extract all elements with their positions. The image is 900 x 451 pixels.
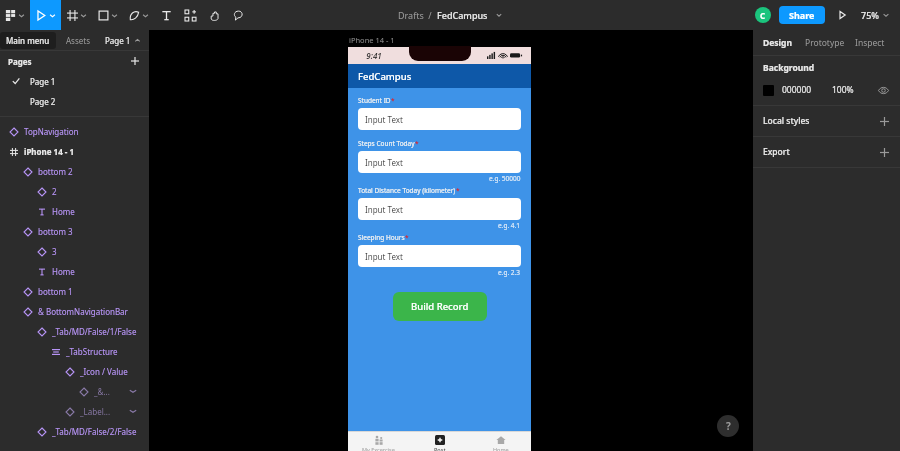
staticText: e.g. 50000 — [489, 174, 521, 183]
staticText: Input Text — [365, 114, 403, 125]
button[interactable]: & BottomNavigationBar — [0, 301, 149, 321]
button[interactable]: bottom 3 — [0, 221, 149, 241]
button[interactable]: Text tool — [154, 0, 178, 30]
button[interactable]: Design — [763, 33, 793, 53]
staticText: Build Record — [411, 300, 469, 313]
button[interactable]: Build Record — [393, 292, 487, 321]
button[interactable]: FedCampus — [435, 9, 490, 21]
button[interactable]: _TabStructure — [0, 341, 149, 361]
button[interactable]: bottom 1 — [0, 281, 149, 301]
button[interactable]: Share — [779, 6, 825, 24]
staticText: Steps Count Today — [358, 139, 415, 148]
staticText: Local styles — [763, 115, 810, 127]
staticText: bottom 2 — [38, 166, 73, 177]
button[interactable]: Home — [0, 201, 149, 221]
button[interactable]: _Icon / Value — [0, 361, 149, 381]
button[interactable]: Page 1 — [0, 71, 149, 91]
button[interactable]: Account C — [755, 7, 771, 23]
button[interactable]: Move tool — [30, 0, 61, 30]
staticText: Prototype — [805, 37, 845, 49]
staticText: iPhone 14 - 1 — [349, 35, 395, 45]
staticText: Background — [763, 62, 815, 74]
staticText: _Tab/MD/False/1/False — [52, 326, 137, 337]
button[interactable]: 100% — [832, 84, 854, 96]
staticText: 9:41 — [366, 50, 382, 61]
staticText: Input Text — [365, 204, 403, 215]
button[interactable]: Page 2 — [0, 91, 149, 111]
button[interactable]: Pen tool — [123, 0, 154, 30]
staticText: * — [405, 233, 409, 242]
button[interactable]: Export — [753, 137, 900, 167]
staticText: ? — [726, 419, 731, 433]
staticText: / — [426, 9, 435, 21]
staticText: 3 — [52, 246, 57, 257]
button[interactable]: Input Text — [358, 151, 521, 173]
button[interactable]: Figma menu — [0, 0, 30, 30]
button[interactable]: Main menu — [0, 32, 56, 49]
button[interactable]: Present — [835, 8, 849, 22]
button[interactable]: Help — [717, 415, 739, 437]
staticText: Design — [763, 37, 793, 49]
staticText: Student ID — [358, 96, 391, 105]
staticText: Export — [763, 146, 790, 158]
staticText: Page 2 — [30, 96, 56, 107]
staticText: 000000 — [782, 84, 812, 96]
button[interactable]: Hand tool — [202, 0, 226, 30]
button[interactable]: Home — [0, 261, 149, 281]
button[interactable]: Assets — [64, 32, 93, 49]
button[interactable]: Home — [470, 432, 531, 451]
button[interactable]: File menu — [494, 10, 504, 20]
button[interactable]: bottom 2 — [0, 161, 149, 181]
staticText: _TabStructure — [66, 346, 118, 357]
button[interactable]: TopNavigation — [0, 121, 149, 141]
button[interactable]: Post — [409, 432, 470, 451]
button[interactable]: 2 — [0, 181, 149, 201]
staticText: 2 — [52, 186, 57, 197]
staticText: * — [456, 186, 460, 195]
button[interactable]: Input Text — [358, 108, 521, 130]
button[interactable]: Drafts — [396, 9, 426, 21]
button[interactable]: Local styles — [753, 106, 900, 136]
button[interactable]: My Excercise — [348, 432, 409, 451]
button[interactable]: iPhone 14 - 1 — [0, 141, 149, 161]
button[interactable]: Input Text — [358, 198, 521, 220]
staticText: 75% — [861, 9, 879, 21]
staticText: 100% — [832, 84, 854, 96]
staticText: _&... — [94, 386, 110, 397]
staticText: Main menu — [6, 35, 50, 46]
staticText: Drafts — [398, 9, 424, 21]
staticText: Inspect — [855, 37, 885, 49]
staticText: bottom 3 — [38, 226, 73, 237]
staticText: * — [415, 139, 419, 148]
staticText: TopNavigation — [24, 126, 79, 137]
button[interactable]: _Tab/MD/False/2/False — [0, 421, 149, 441]
button[interactable]: Toggle visibility — [877, 84, 890, 97]
staticText: Home — [493, 446, 509, 451]
staticText: Sleeping Hours — [358, 233, 405, 242]
button[interactable]: Page 1 — [101, 32, 145, 49]
button[interactable]: 3 — [0, 241, 149, 261]
button[interactable]: Prototype — [805, 33, 845, 53]
staticText: Page 1 — [30, 76, 56, 87]
staticText: Input Text — [365, 251, 403, 262]
button[interactable]: 75% — [859, 9, 892, 21]
staticText: e.g. 4.1 — [498, 221, 521, 230]
staticText: Home — [52, 206, 75, 217]
button[interactable]: Shape tool — [92, 0, 123, 30]
button[interactable]: Inspect — [855, 33, 885, 53]
button[interactable]: Components — [178, 0, 202, 30]
staticText: _Label... — [80, 406, 111, 417]
button[interactable]: Input Text — [358, 245, 521, 267]
staticText: Home — [52, 266, 75, 277]
button[interactable]: Add page — [129, 55, 141, 67]
button[interactable]: 000000 — [782, 84, 812, 96]
staticText: iPhone 14 - 1 — [24, 146, 75, 157]
button[interactable]: _Label... — [0, 401, 149, 421]
staticText: My Excercise — [362, 446, 395, 451]
button[interactable]: _Tab/MD/False/1/False — [0, 321, 149, 341]
button[interactable]: Frame tool — [61, 0, 92, 30]
button[interactable]: _&... — [0, 381, 149, 401]
button[interactable]: Comment — [226, 0, 250, 30]
staticText: Page 1 — [105, 35, 131, 46]
